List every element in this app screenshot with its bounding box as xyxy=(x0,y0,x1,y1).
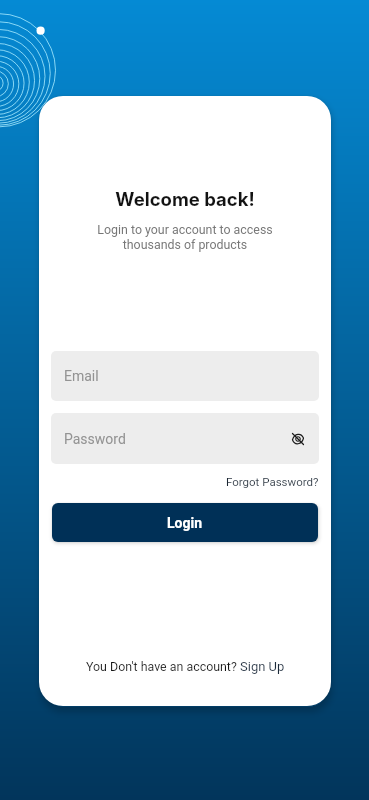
button[interactable]: Sign Up xyxy=(240,659,285,674)
staticText: Password xyxy=(64,431,126,447)
button[interactable]: Password xyxy=(51,413,319,464)
button[interactable]: Show password xyxy=(287,428,309,450)
staticText: Email xyxy=(64,368,99,384)
staticText: You Don't have an account? xyxy=(86,659,240,674)
staticText: Welcome back! xyxy=(39,188,331,210)
staticText: Login to your account to access thousand… xyxy=(39,222,331,252)
button[interactable]: Forgot Password? xyxy=(226,473,319,490)
button[interactable]: Email xyxy=(51,351,319,401)
staticText: Login xyxy=(167,515,203,531)
button[interactable]: Login xyxy=(52,503,318,542)
